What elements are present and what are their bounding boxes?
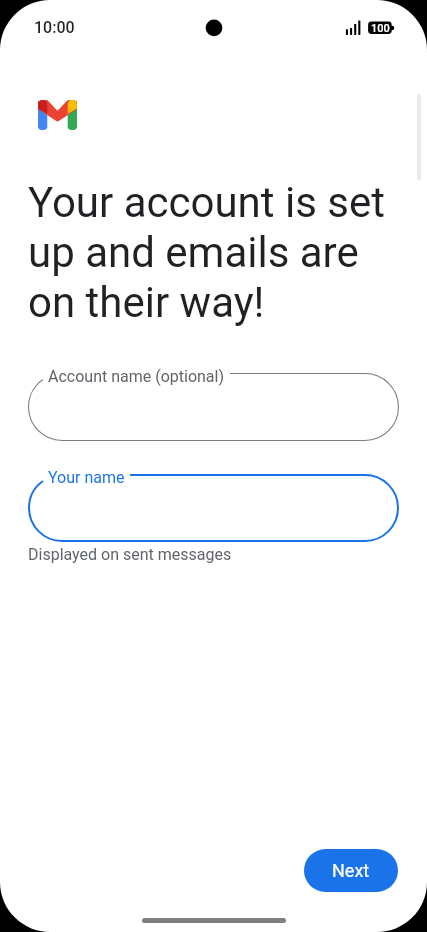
staticText: 10:00 [34,18,75,37]
button[interactable]: Next [304,849,398,892]
staticText: 100 [371,22,390,35]
staticText: Your name [48,468,125,487]
staticText: Displayed on sent messages [28,545,232,564]
staticText: Next [332,860,370,881]
staticText: Account name (optional) [48,367,225,386]
staticText: Your account is set up and emails are on… [28,178,394,327]
button[interactable]: Account name (optional) [28,373,399,441]
button[interactable]: Your name [28,474,399,542]
